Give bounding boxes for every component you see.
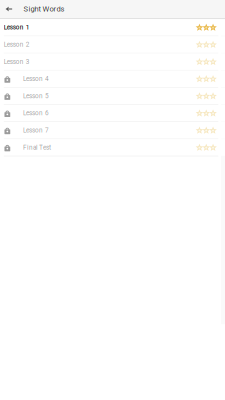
staticText: Final Test — [23, 144, 51, 151]
staticText: Lesson 5 — [23, 92, 49, 100]
staticText: Lesson 3 — [4, 58, 30, 65]
button[interactable]: Final Test — [0, 139, 225, 156]
button[interactable]: Lesson 1 — [0, 19, 225, 36]
staticText: Lesson 2 — [4, 41, 30, 48]
button[interactable]: Lesson 3 — [0, 53, 225, 70]
button[interactable]: Lesson 4 — [0, 71, 225, 87]
button[interactable]: Lesson 7 — [0, 122, 225, 138]
staticText: Sight Words — [23, 4, 64, 13]
staticText: Lesson 7 — [23, 127, 49, 134]
staticText: Lesson 1 — [4, 24, 30, 31]
button[interactable]: Lesson 5 — [0, 88, 225, 104]
button[interactable]: Lesson 2 — [0, 36, 225, 53]
staticText: Lesson 4 — [23, 75, 49, 83]
button[interactable]: Lesson 6 — [0, 105, 225, 121]
button[interactable]: Back — [0, 0, 18, 18]
staticText: Lesson 6 — [23, 109, 49, 117]
